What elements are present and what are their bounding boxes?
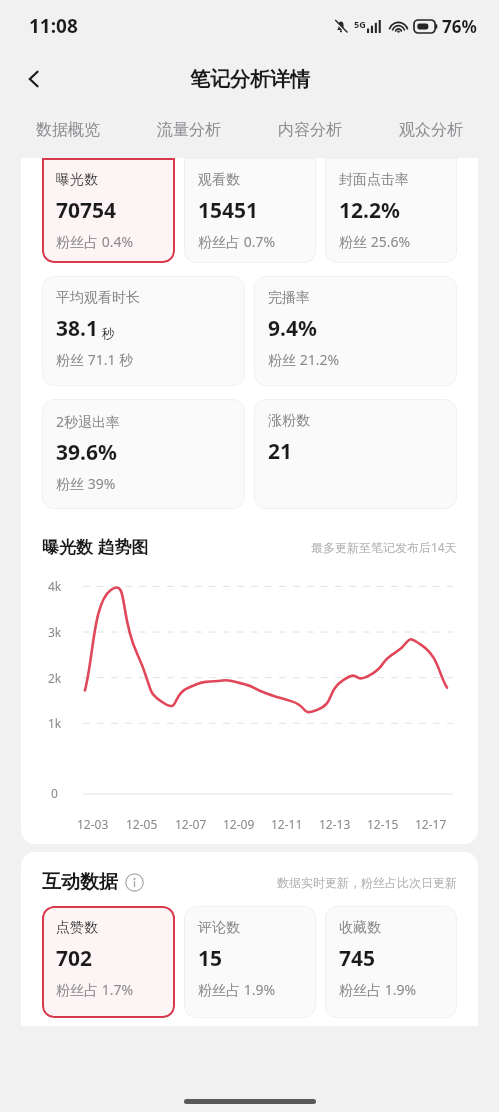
staticText: 5G	[354, 18, 366, 30]
staticText: 曝光数 趋势图	[42, 535, 149, 558]
staticText: 秒	[102, 325, 115, 341]
staticText: 互动数据	[42, 870, 118, 894]
button[interactable]: 内容分析	[249, 106, 370, 154]
staticText: 12-11	[271, 816, 303, 832]
staticText: 2秒退出率	[56, 412, 121, 431]
staticText: 粉丝占 1.9%	[339, 980, 417, 999]
staticText: 0	[51, 785, 58, 801]
staticText: 1k	[48, 715, 62, 731]
staticText: 流量分析	[157, 120, 221, 140]
button[interactable]: 评论数	[184, 906, 316, 1018]
staticText: 粉丝占 0.7%	[198, 232, 276, 250]
staticText: 粉丝 25.6%	[339, 232, 411, 250]
button[interactable]: 观看数	[184, 158, 316, 263]
staticText: 粉丝 21.2%	[268, 350, 340, 369]
staticText: 3k	[48, 624, 62, 640]
staticText: 粉丝占 1.9%	[198, 980, 276, 999]
button[interactable]: Back	[12, 57, 56, 101]
button[interactable]: 收藏数	[325, 906, 457, 1018]
staticText: 702	[56, 944, 93, 973]
staticText: 内容分析	[278, 120, 342, 140]
staticText: 12-09	[223, 816, 255, 832]
staticText: 11:08	[29, 13, 78, 39]
button[interactable]: 曝光数	[42, 158, 175, 263]
button[interactable]: Info	[125, 873, 144, 892]
staticText: 4k	[48, 578, 62, 594]
button[interactable]: 完播率	[254, 276, 457, 386]
staticText: 数据概览	[36, 120, 100, 140]
staticText: 点赞数	[56, 919, 98, 937]
staticText: 评论数	[198, 919, 240, 937]
staticText: 12-05	[126, 816, 158, 832]
staticText: 70754	[56, 196, 117, 225]
staticText: 38.1	[56, 314, 98, 343]
staticText: 曝光数	[56, 171, 98, 189]
staticText: 12.2%	[339, 196, 400, 225]
staticText: 2k	[48, 670, 62, 686]
staticText: 平均观看时长	[56, 289, 140, 307]
staticText: 观众分析	[399, 120, 463, 140]
button[interactable]: 数据概览	[8, 106, 128, 154]
button[interactable]: 涨粉数	[254, 399, 457, 509]
staticText: 收藏数	[339, 919, 381, 937]
button[interactable]: 观众分析	[370, 106, 491, 154]
staticText: 12-17	[415, 816, 447, 832]
staticText: 封面点击率	[339, 171, 409, 189]
staticText: 观看数	[198, 171, 240, 189]
staticText: 最多更新至笔记发布后14天	[311, 539, 457, 555]
staticText: 9.4%	[268, 314, 317, 343]
button[interactable]: 点赞数	[42, 906, 175, 1018]
staticText: 12-13	[319, 816, 351, 832]
staticText: 笔记分析详情	[190, 67, 310, 92]
staticText: 12-07	[175, 816, 207, 832]
staticText: 涨粉数	[268, 412, 310, 430]
staticText: 粉丝 39%	[56, 474, 116, 493]
button[interactable]: 平均观看时长	[42, 276, 245, 386]
staticText: 12-15	[367, 816, 399, 832]
staticText: 完播率	[268, 289, 310, 307]
button[interactable]: 2秒退出率	[42, 399, 245, 509]
staticText: 15	[198, 944, 223, 973]
staticText: 76%	[442, 15, 477, 38]
staticText: 21	[268, 437, 293, 466]
button[interactable]: 封面点击率	[325, 158, 457, 263]
staticText: 数据实时更新，粉丝占比次日更新	[277, 875, 457, 890]
staticText: 39.6%	[56, 438, 117, 467]
staticText: 12-03	[77, 816, 109, 832]
staticText: 粉丝占 0.4%	[56, 232, 134, 250]
staticText: 粉丝占 1.7%	[56, 980, 134, 999]
staticText: 粉丝 71.1 秒	[56, 350, 134, 369]
staticText: 745	[339, 944, 376, 973]
button[interactable]: 流量分析	[128, 106, 249, 154]
staticText: 15451	[198, 196, 259, 225]
